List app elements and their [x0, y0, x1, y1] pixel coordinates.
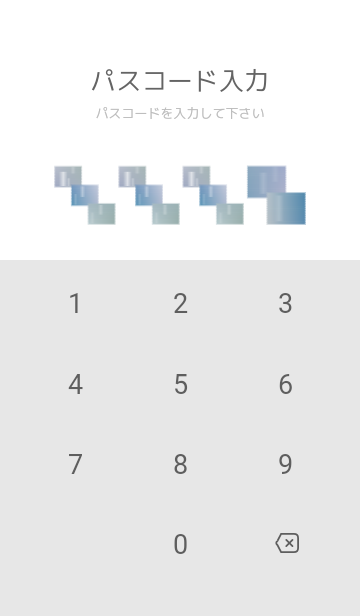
staticText: パスコードを入力して下さい: [95, 104, 265, 122]
staticText: 8: [173, 449, 189, 481]
button[interactable]: 5: [128, 345, 233, 425]
button[interactable]: 6: [233, 345, 338, 425]
button[interactable]: 4: [23, 345, 128, 425]
staticText: 7: [68, 449, 84, 481]
staticText: 6: [278, 369, 294, 401]
button[interactable]: 8: [128, 425, 233, 505]
button[interactable]: Backspace: [233, 505, 338, 585]
staticText: 4: [68, 369, 84, 401]
button[interactable]: 0: [128, 505, 233, 585]
staticText: 5: [173, 369, 189, 401]
staticText: パスコード入力: [90, 62, 270, 98]
staticText: 2: [173, 288, 189, 320]
button[interactable]: 7: [23, 425, 128, 505]
staticText: 0: [173, 529, 189, 561]
staticText: 3: [278, 288, 294, 320]
button[interactable]: 1: [23, 264, 128, 344]
button[interactable]: 3: [233, 264, 338, 344]
button[interactable]: 9: [233, 425, 338, 505]
staticText: 9: [278, 449, 294, 481]
staticText: 1: [68, 288, 84, 320]
button[interactable]: 2: [128, 264, 233, 344]
